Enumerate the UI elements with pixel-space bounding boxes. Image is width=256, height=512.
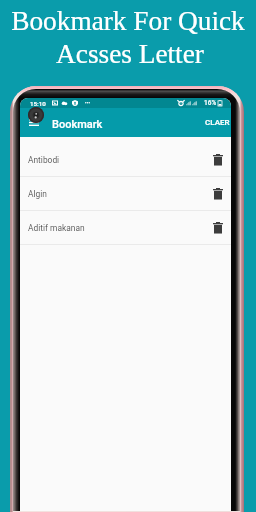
staticText: Bookmark For Quick <box>11 6 245 36</box>
staticText: Algin <box>28 189 47 199</box>
button[interactable]: Aditif makanan <box>20 211 231 245</box>
button[interactable]: CLAER <box>200 112 231 133</box>
button[interactable]: Algin <box>20 177 231 211</box>
staticText: Antibodi <box>28 155 60 165</box>
button[interactable]: Delete Algin <box>210 186 226 202</box>
staticText: 16% <box>204 99 217 107</box>
staticText: Acsses Letter <box>56 39 204 69</box>
staticText: Aditif makanan <box>28 223 85 233</box>
staticText: 15:10 <box>30 100 46 107</box>
button[interactable]: Antibodi <box>20 143 231 177</box>
button[interactable]: Open navigation menu <box>26 115 42 129</box>
button[interactable]: Delete Antibodi <box>210 152 226 168</box>
button[interactable]: Delete Aditif makanan <box>210 220 226 236</box>
staticText: CLAER <box>205 118 230 127</box>
staticText: Bookmark <box>52 118 103 131</box>
